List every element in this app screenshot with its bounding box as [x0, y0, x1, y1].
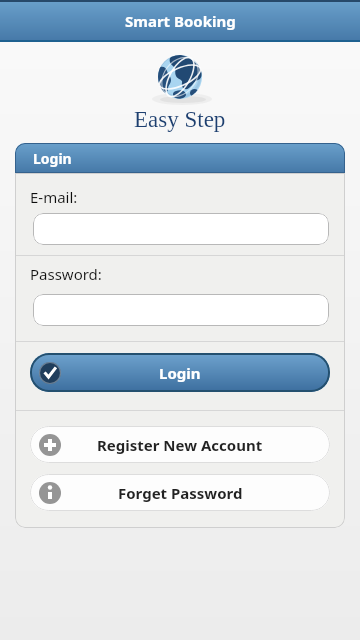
staticText: Easy Step	[134, 107, 226, 132]
staticText: Login	[33, 149, 72, 168]
staticText: Login	[159, 363, 201, 383]
staticText: Forget Password	[118, 483, 243, 503]
button[interactable]: Login	[30, 353, 330, 392]
staticText: Register New Account	[97, 435, 263, 455]
button[interactable]	[33, 294, 329, 326]
button[interactable]	[33, 213, 329, 245]
button[interactable]: Register New Account	[30, 426, 330, 463]
button[interactable]: Forget Password	[30, 474, 330, 511]
staticText: Password:	[30, 264, 102, 284]
staticText: E-mail:	[30, 187, 78, 207]
staticText: Smart Booking	[125, 11, 236, 31]
